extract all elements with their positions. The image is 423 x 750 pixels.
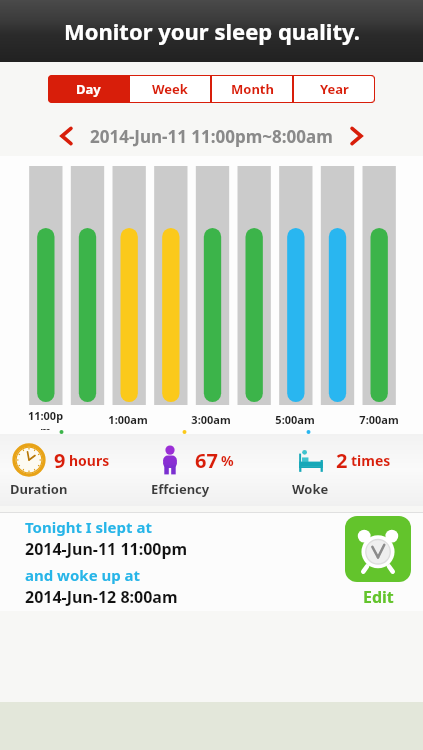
staticText: 11:00pm (25, 408, 66, 430)
staticText: Monitor your sleep quality. (64, 16, 360, 46)
button[interactable]: Year (294, 76, 374, 102)
staticText: hours (69, 451, 110, 470)
button[interactable]: Previous day (52, 121, 82, 151)
staticText: times (351, 451, 391, 470)
staticText: Tonight I slept at (25, 517, 152, 537)
button[interactable]: 9 (0, 434, 141, 506)
button[interactable]: Month (212, 76, 292, 102)
button[interactable]: 67 (141, 434, 282, 506)
staticText: 2014-Jun-11 11:00pm (25, 538, 188, 560)
staticText: Woke (292, 480, 329, 498)
staticText: 5:00am (275, 412, 315, 427)
staticText: % (221, 451, 234, 470)
staticText: 3:00am (191, 412, 231, 427)
staticText: 67 (195, 447, 218, 474)
button[interactable]: 2 (282, 434, 423, 506)
staticText: and woke up at (25, 565, 141, 585)
staticText: Month (231, 80, 274, 98)
staticText: Day (76, 80, 101, 98)
staticText: Edit (363, 586, 394, 608)
button[interactable]: Edit (333, 513, 423, 611)
staticText: Year (320, 80, 349, 98)
staticText: Week (152, 80, 188, 98)
staticText: 9 (54, 447, 66, 474)
staticText: 2014-Jun-12 8:00am (25, 586, 178, 608)
staticText: Effciency (151, 480, 210, 498)
button[interactable]: Day (49, 76, 128, 102)
staticText: 1:00am (108, 412, 148, 427)
button[interactable]: Next day (341, 121, 371, 151)
staticText: 7:00am (359, 412, 399, 427)
staticText: 2 (336, 447, 348, 474)
button[interactable]: Week (130, 76, 210, 102)
staticText: 2014-Jun-11 11:00pm~8:00am (90, 125, 333, 148)
staticText: Duration (10, 480, 68, 498)
